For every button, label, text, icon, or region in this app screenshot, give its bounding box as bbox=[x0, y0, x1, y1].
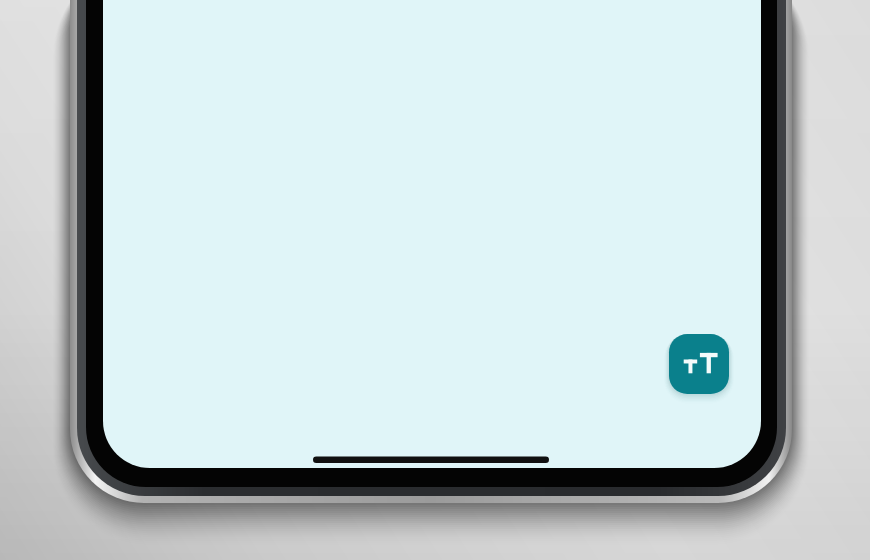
button[interactable]: Change text size bbox=[669, 334, 729, 394]
